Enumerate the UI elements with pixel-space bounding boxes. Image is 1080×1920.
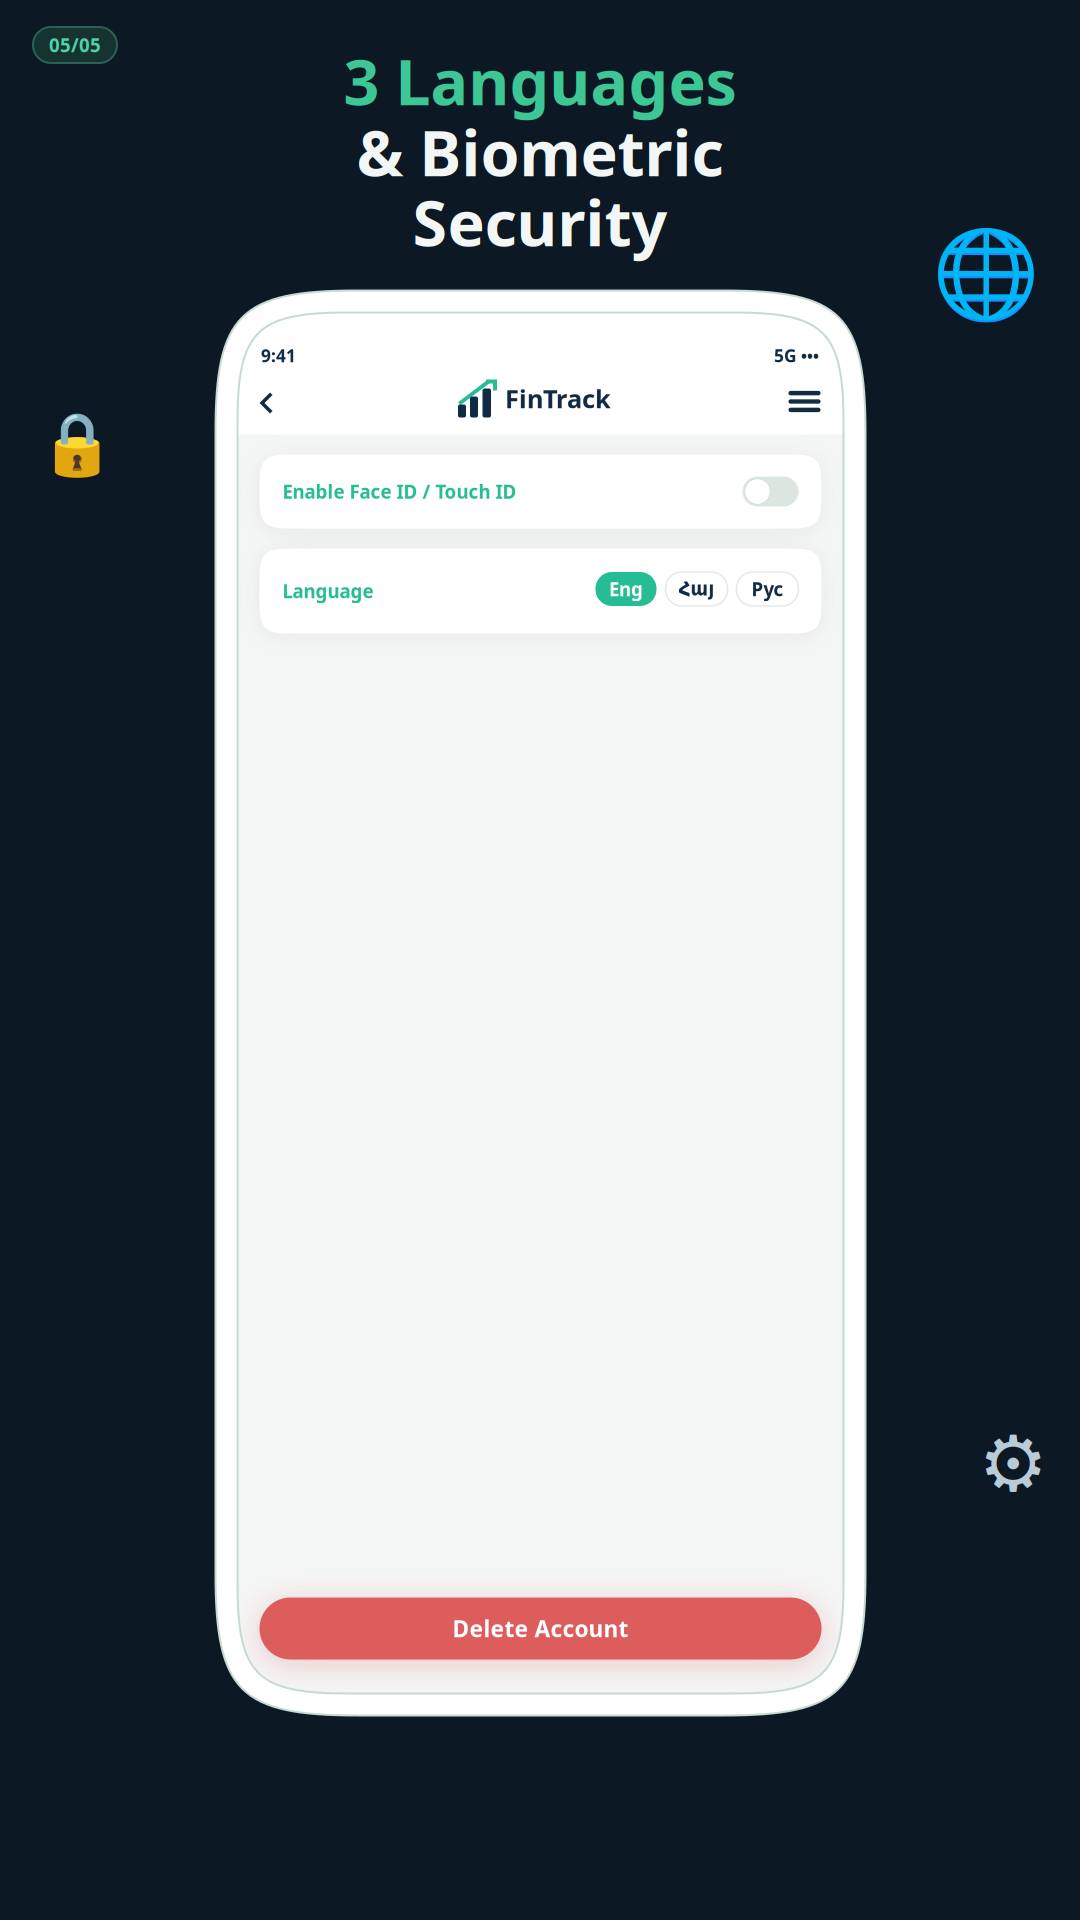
button[interactable]: Eng [595,572,656,606]
button[interactable]: Рус [736,572,798,606]
staticText: 3 Languages [343,39,736,123]
button[interactable]: Enable Face ID / Touch ID [742,476,798,506]
staticText: & Biometric [356,110,723,194]
button[interactable]: Delete Account [259,1597,821,1659]
staticText: Рус [751,577,783,601]
staticText: 🌐 [932,224,1040,323]
staticText: Հայ [678,578,714,600]
staticText: Delete Account [452,1613,628,1643]
button[interactable]: 05/05 [33,27,117,63]
staticText: 05/05 [49,33,101,57]
staticText: FinTrack [505,382,611,415]
staticText: ••• [801,345,819,366]
button[interactable]: Հայ [665,572,727,606]
staticText: 9:41 [261,344,296,367]
staticText: ⚙ [978,1420,1047,1508]
staticText: 🔒 [39,409,115,479]
staticText: Language [282,579,373,603]
button[interactable]: Menu [782,380,826,422]
staticText: 5G [774,344,797,367]
button[interactable]: Back [257,390,297,430]
staticText: Enable Face ID / Touch ID [282,479,516,504]
staticText: Security [412,180,667,264]
staticText: Eng [609,577,643,601]
